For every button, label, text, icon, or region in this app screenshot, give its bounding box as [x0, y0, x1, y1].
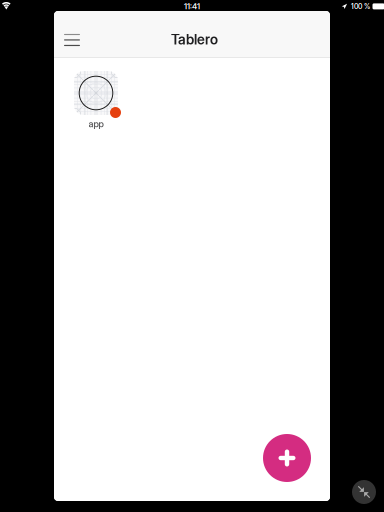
staticText: 100 % [351, 2, 370, 11]
staticText: 11:41 [184, 1, 200, 11]
button[interactable]: Shrink window [352, 480, 376, 504]
staticText: app [88, 118, 103, 129]
button[interactable]: Add [263, 434, 311, 482]
staticText: Tablero [171, 31, 218, 48]
button[interactable]: app [74, 71, 124, 129]
button[interactable]: Menu [58, 26, 86, 54]
